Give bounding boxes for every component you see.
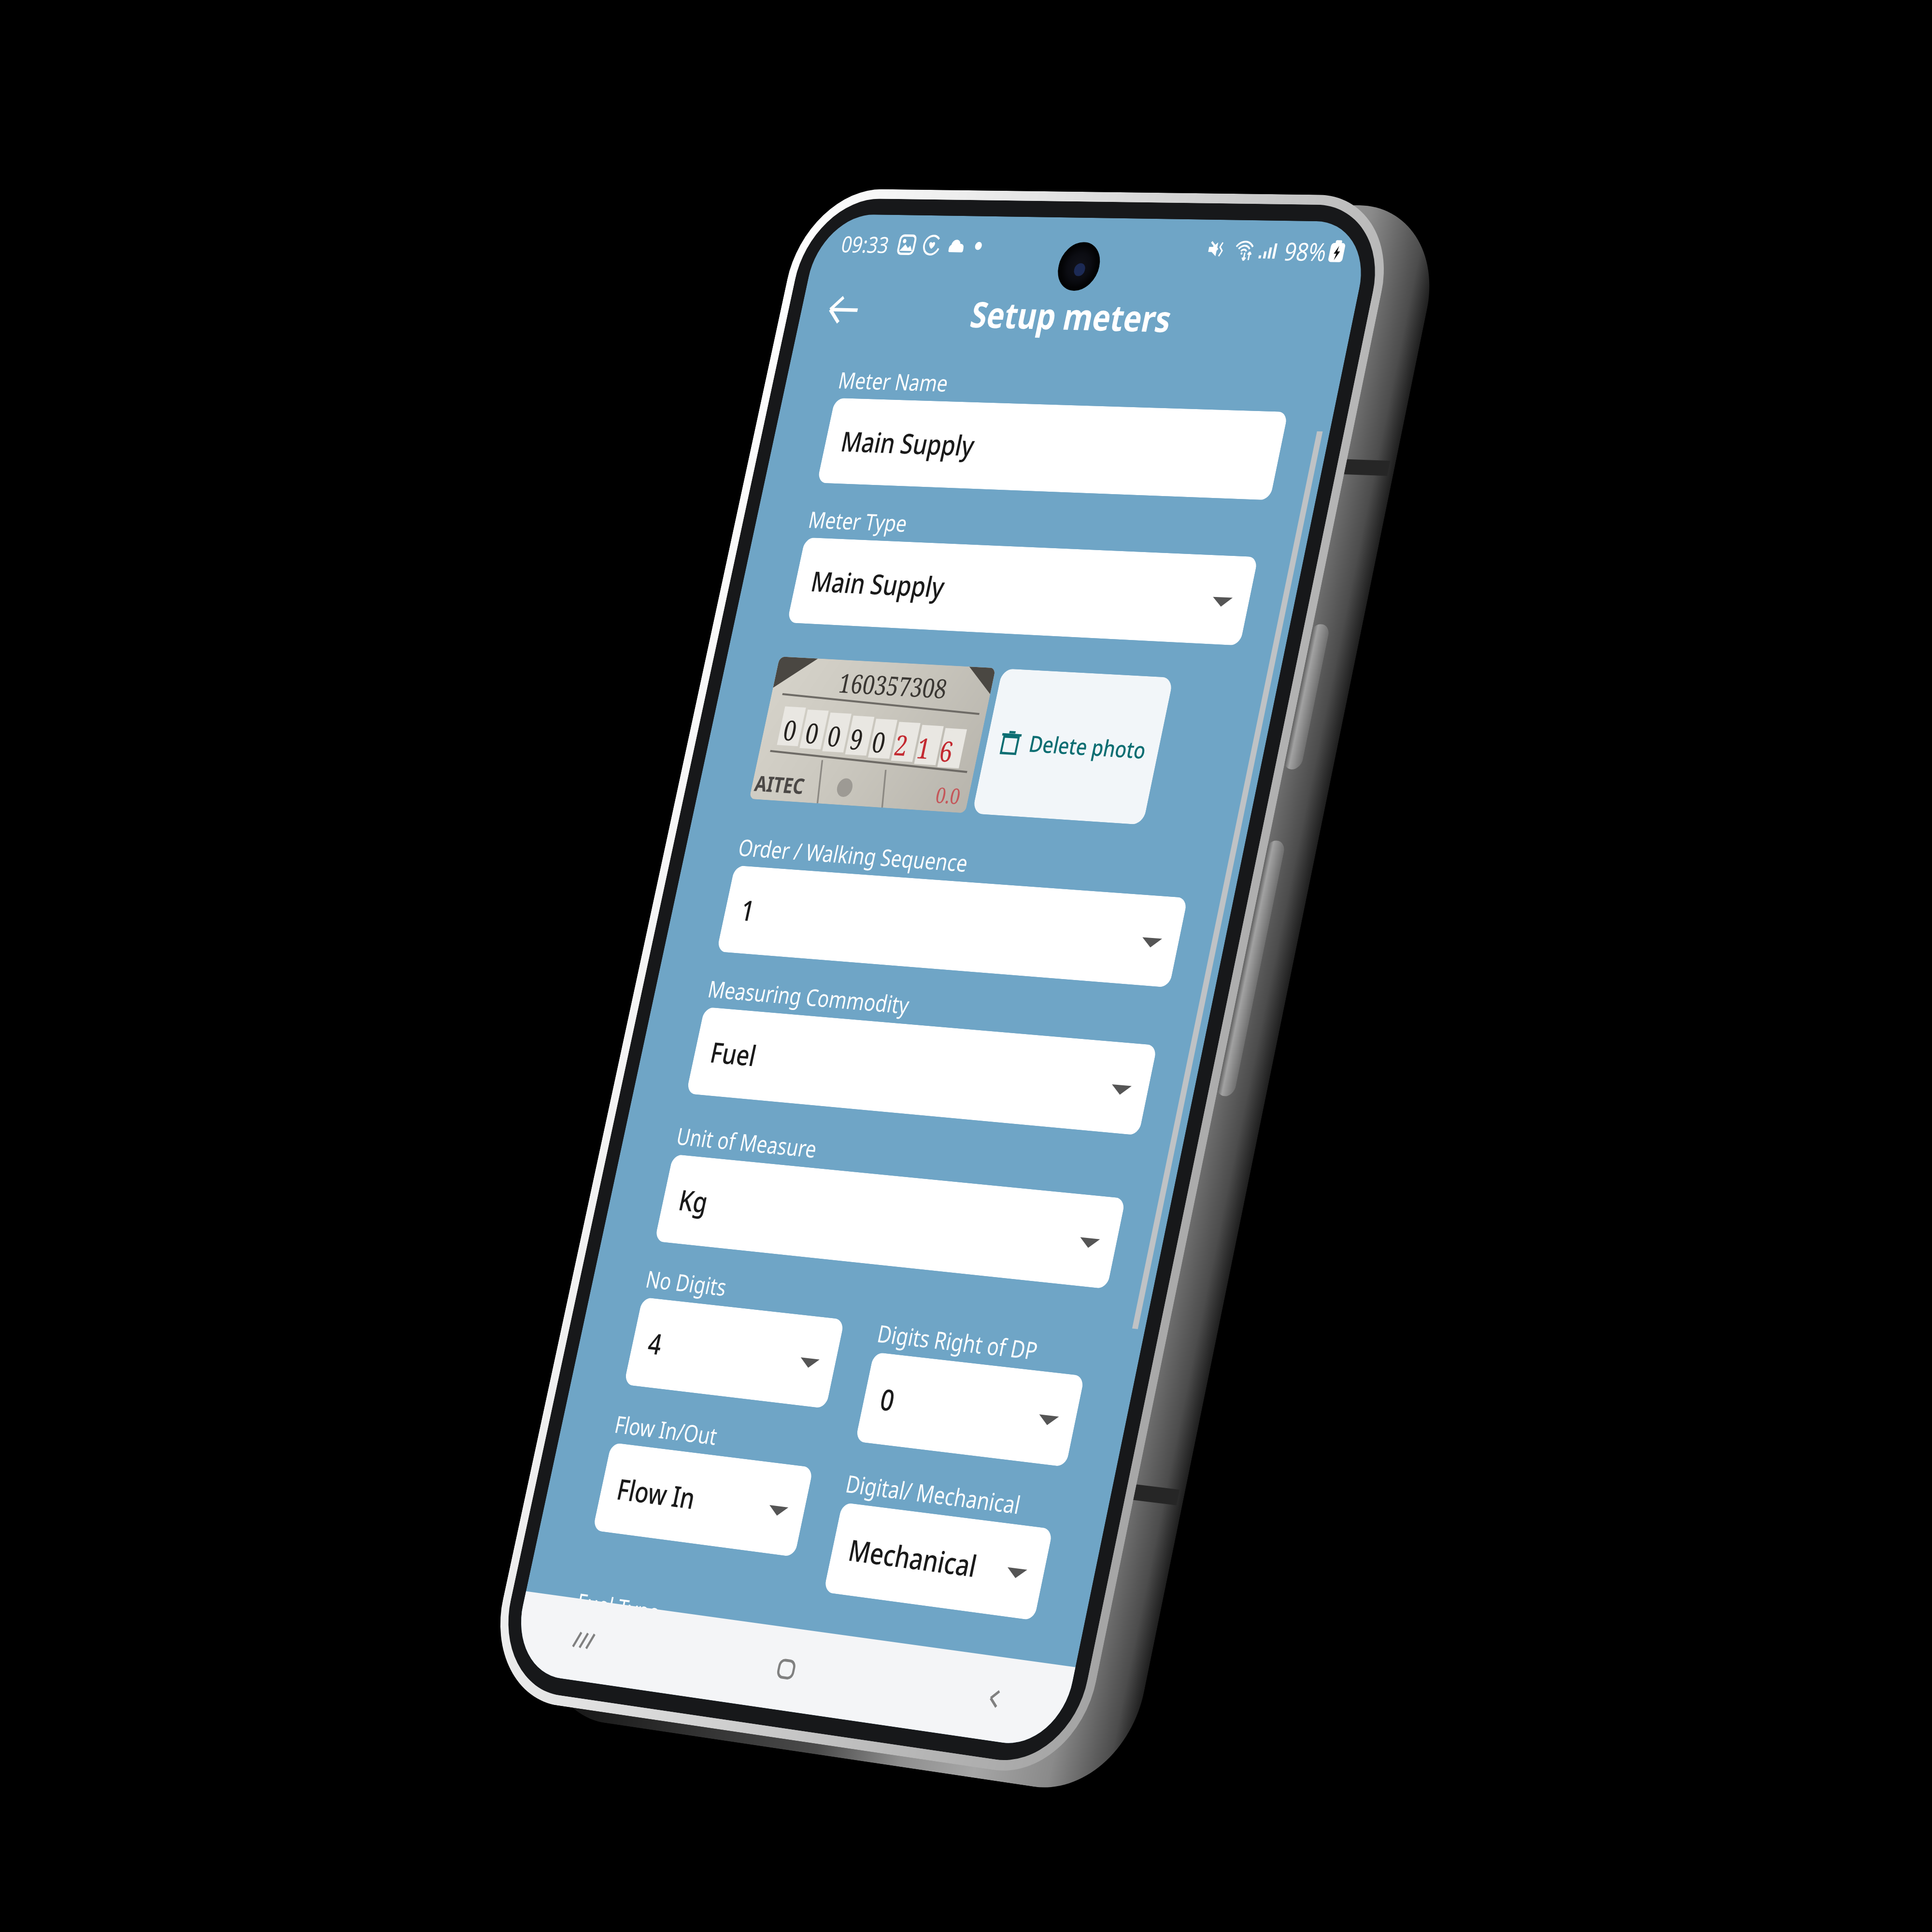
staticText: Unit of Measure [674,1120,821,1165]
staticText: Setup meters [966,289,1177,342]
button[interactable]: 4 [624,1297,845,1409]
staticText: 160357308 [836,665,951,707]
staticText: Main Supply [808,562,949,606]
staticText: 6 [936,732,957,770]
staticText: 4 [645,1324,666,1363]
button[interactable]: Home [771,1652,802,1686]
button[interactable]: Back [979,1681,1011,1716]
button[interactable]: 0 [855,1352,1085,1467]
staticText: 09:33 [839,228,892,260]
staticText: Digital/ Mechanical [843,1467,1024,1521]
staticText: Meter Type [806,504,911,538]
staticText: 98% [1281,234,1331,268]
staticText: 9 [846,720,868,758]
staticText: 0 [780,711,801,749]
staticText: Meter Name [836,364,952,398]
staticText: 0 [877,1379,899,1420]
button[interactable]: Main Supply [787,537,1258,646]
staticText: Fuel [707,1033,760,1074]
staticText: Measuring Commodity [705,973,913,1021]
button[interactable]: Back [814,281,873,339]
staticText: 0 [802,714,823,752]
staticText: Order / Walking Sequence [736,831,972,879]
staticText: Mechanical [845,1530,982,1586]
staticText: 0 [869,723,890,761]
staticText: Flow In/Out [612,1408,720,1452]
staticText: Fuel Type [574,1585,664,1628]
staticText: 2 [891,726,912,764]
staticText: Flow In [614,1469,700,1518]
staticText: 1 [913,729,935,767]
staticText: AITEC [752,768,808,801]
button[interactable]: Mechanical [823,1502,1053,1621]
staticText: Main Supply [838,422,978,464]
button[interactable]: 1 [717,865,1188,988]
staticText: 0.0 [933,780,964,811]
button[interactable]: Meter photo [749,656,996,813]
staticText: Digits Right of DP [875,1317,1041,1367]
staticText: No Digits [643,1263,730,1303]
button[interactable]: Recents [569,1624,599,1657]
button[interactable]: Flow In [593,1442,813,1557]
staticText: Delete photo [1026,729,1149,765]
button[interactable]: Main Supply [817,398,1288,500]
button[interactable]: Kg [654,1154,1126,1289]
staticText: 1 [737,891,759,929]
button[interactable]: Delete photo [972,668,1174,825]
staticText: Kg [675,1180,712,1221]
staticText: 0 [824,717,845,755]
button[interactable]: Fuel [686,1007,1157,1135]
